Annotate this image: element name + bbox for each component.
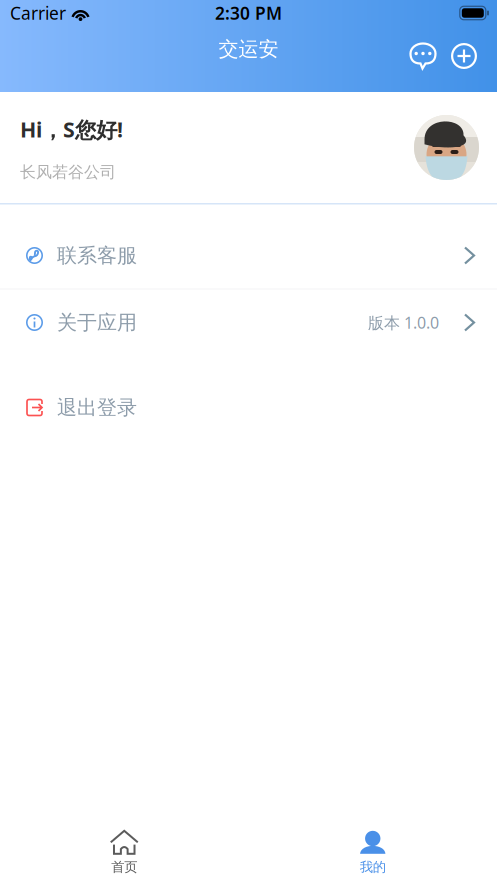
button[interactable]: Add: [445, 36, 483, 76]
staticText: 版本 1.0.0: [368, 312, 439, 333]
staticText: 我的: [360, 859, 386, 875]
button[interactable]: 首页: [0, 831, 248, 875]
staticText: 长风若谷公司: [20, 162, 116, 182]
staticText: 退出登录: [57, 395, 137, 420]
button[interactable]: Messages: [404, 36, 442, 76]
staticText: Hi，S您好!: [20, 115, 123, 143]
staticText: 联系客服: [57, 243, 137, 268]
staticText: Carrier: [10, 1, 66, 24]
staticText: 关于应用: [57, 310, 137, 335]
staticText: 2:30 PM: [215, 1, 282, 24]
staticText: 首页: [111, 859, 137, 875]
staticText: 交运安: [218, 37, 278, 61]
button[interactable]: 我的: [248, 831, 497, 875]
button[interactable]: 退出登录: [0, 374, 497, 440]
button[interactable]: 关于应用: [0, 289, 497, 355]
button[interactable]: 联系客服: [0, 222, 497, 288]
